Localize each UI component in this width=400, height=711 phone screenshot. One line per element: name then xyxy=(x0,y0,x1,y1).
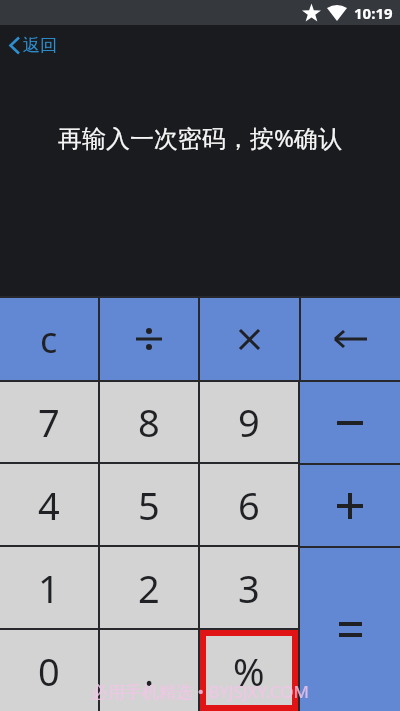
button[interactable]: 7 xyxy=(0,382,98,462)
staticText: 返回 xyxy=(23,35,57,56)
button[interactable]: 返回 xyxy=(8,35,57,56)
button[interactable]: 1 xyxy=(0,547,98,628)
staticText: 6 xyxy=(238,479,260,531)
staticText: 2 xyxy=(138,562,160,614)
button[interactable]: % xyxy=(200,630,298,711)
button[interactable]: 3 xyxy=(200,547,298,628)
button[interactable] xyxy=(300,382,400,463)
staticText: 再输入一次密码，按%确认 xyxy=(58,121,342,154)
staticText: 1 xyxy=(38,562,60,614)
button[interactable]: 5 xyxy=(100,464,198,545)
button[interactable]: c xyxy=(0,298,98,380)
button[interactable]: 9 xyxy=(200,382,298,462)
button[interactable]: 2 xyxy=(100,547,198,628)
staticText: 7 xyxy=(38,396,60,448)
staticText: 0 xyxy=(38,645,60,697)
staticText: 3 xyxy=(238,562,260,614)
button[interactable]: 6 xyxy=(200,464,298,545)
button[interactable] xyxy=(301,298,400,380)
staticText: 5 xyxy=(138,479,160,531)
staticText: . xyxy=(144,645,155,697)
button[interactable]: 0 xyxy=(0,630,98,711)
staticText: c xyxy=(40,315,58,364)
button[interactable] xyxy=(100,298,198,380)
staticText: % xyxy=(233,645,265,697)
button[interactable] xyxy=(300,548,400,711)
button[interactable]: . xyxy=(100,630,198,711)
button[interactable]: 8 xyxy=(100,382,198,462)
staticText: 10:19 xyxy=(354,3,393,23)
button[interactable]: 4 xyxy=(0,464,98,545)
staticText: 4 xyxy=(38,479,60,531)
button[interactable] xyxy=(200,298,299,380)
staticText: 必用手机精选 • BYJSJXY.COM xyxy=(91,680,309,703)
staticText: 8 xyxy=(138,396,160,448)
staticText: 9 xyxy=(238,396,260,448)
button[interactable] xyxy=(300,465,400,546)
